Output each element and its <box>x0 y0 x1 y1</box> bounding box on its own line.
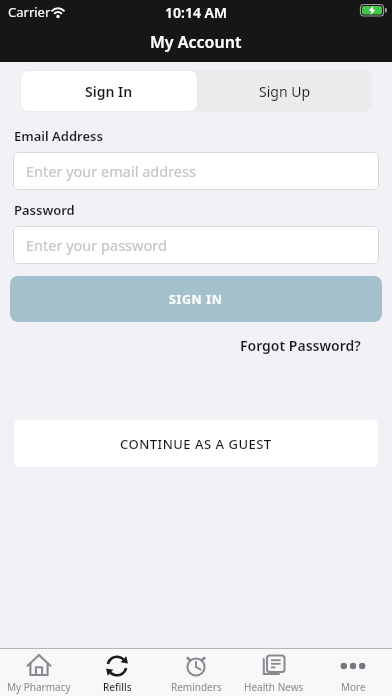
staticText: Reminders <box>171 680 222 694</box>
staticText: CONTINUE AS A GUEST <box>120 435 272 453</box>
staticText: More <box>341 680 366 694</box>
button[interactable]: SIGN IN <box>10 276 382 322</box>
staticText: My Pharmacy <box>7 680 71 694</box>
staticText: Refills <box>103 680 132 694</box>
staticText: Health News <box>244 680 304 694</box>
button[interactable]: Forgot Password? <box>240 336 361 355</box>
staticText: SIGN IN <box>169 291 223 308</box>
button[interactable]: My Pharmacy <box>0 649 78 696</box>
staticText: Sign In <box>85 82 133 101</box>
button[interactable]: Reminders <box>157 649 235 696</box>
button[interactable]: CONTINUE AS A GUEST <box>14 420 378 467</box>
button[interactable]: Enter your password <box>13 226 379 264</box>
staticText: Password <box>14 201 75 219</box>
staticText: My Account <box>150 31 242 53</box>
button[interactable]: More <box>314 649 392 696</box>
button[interactable]: Sign In <box>21 71 197 111</box>
staticText: Enter your password <box>26 235 167 255</box>
staticText: Email Address <box>14 127 103 145</box>
staticText: 10:14 AM <box>165 3 227 22</box>
staticText: Enter your email address <box>26 161 196 181</box>
button[interactable]: Sign Up <box>197 71 372 111</box>
button[interactable]: Health News <box>235 649 313 696</box>
staticText: Carrier <box>8 3 51 21</box>
button[interactable]: Enter your email address <box>13 152 379 190</box>
staticText: Sign Up <box>259 82 311 101</box>
button[interactable]: Refills <box>78 649 156 696</box>
